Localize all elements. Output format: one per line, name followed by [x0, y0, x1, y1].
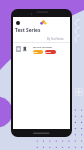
staticText: View Test [45, 50, 56, 54]
staticText: PRACTICE TEST SERIES [33, 46, 52, 48]
button[interactable]: View Test [45, 50, 56, 54]
staticText: Buy Now [33, 50, 43, 54]
staticText: By Test Series [47, 37, 64, 41]
button[interactable]: Menu [16, 21, 20, 25]
staticText: Test Series [15, 27, 41, 34]
button[interactable]: Buy Now [33, 50, 43, 54]
